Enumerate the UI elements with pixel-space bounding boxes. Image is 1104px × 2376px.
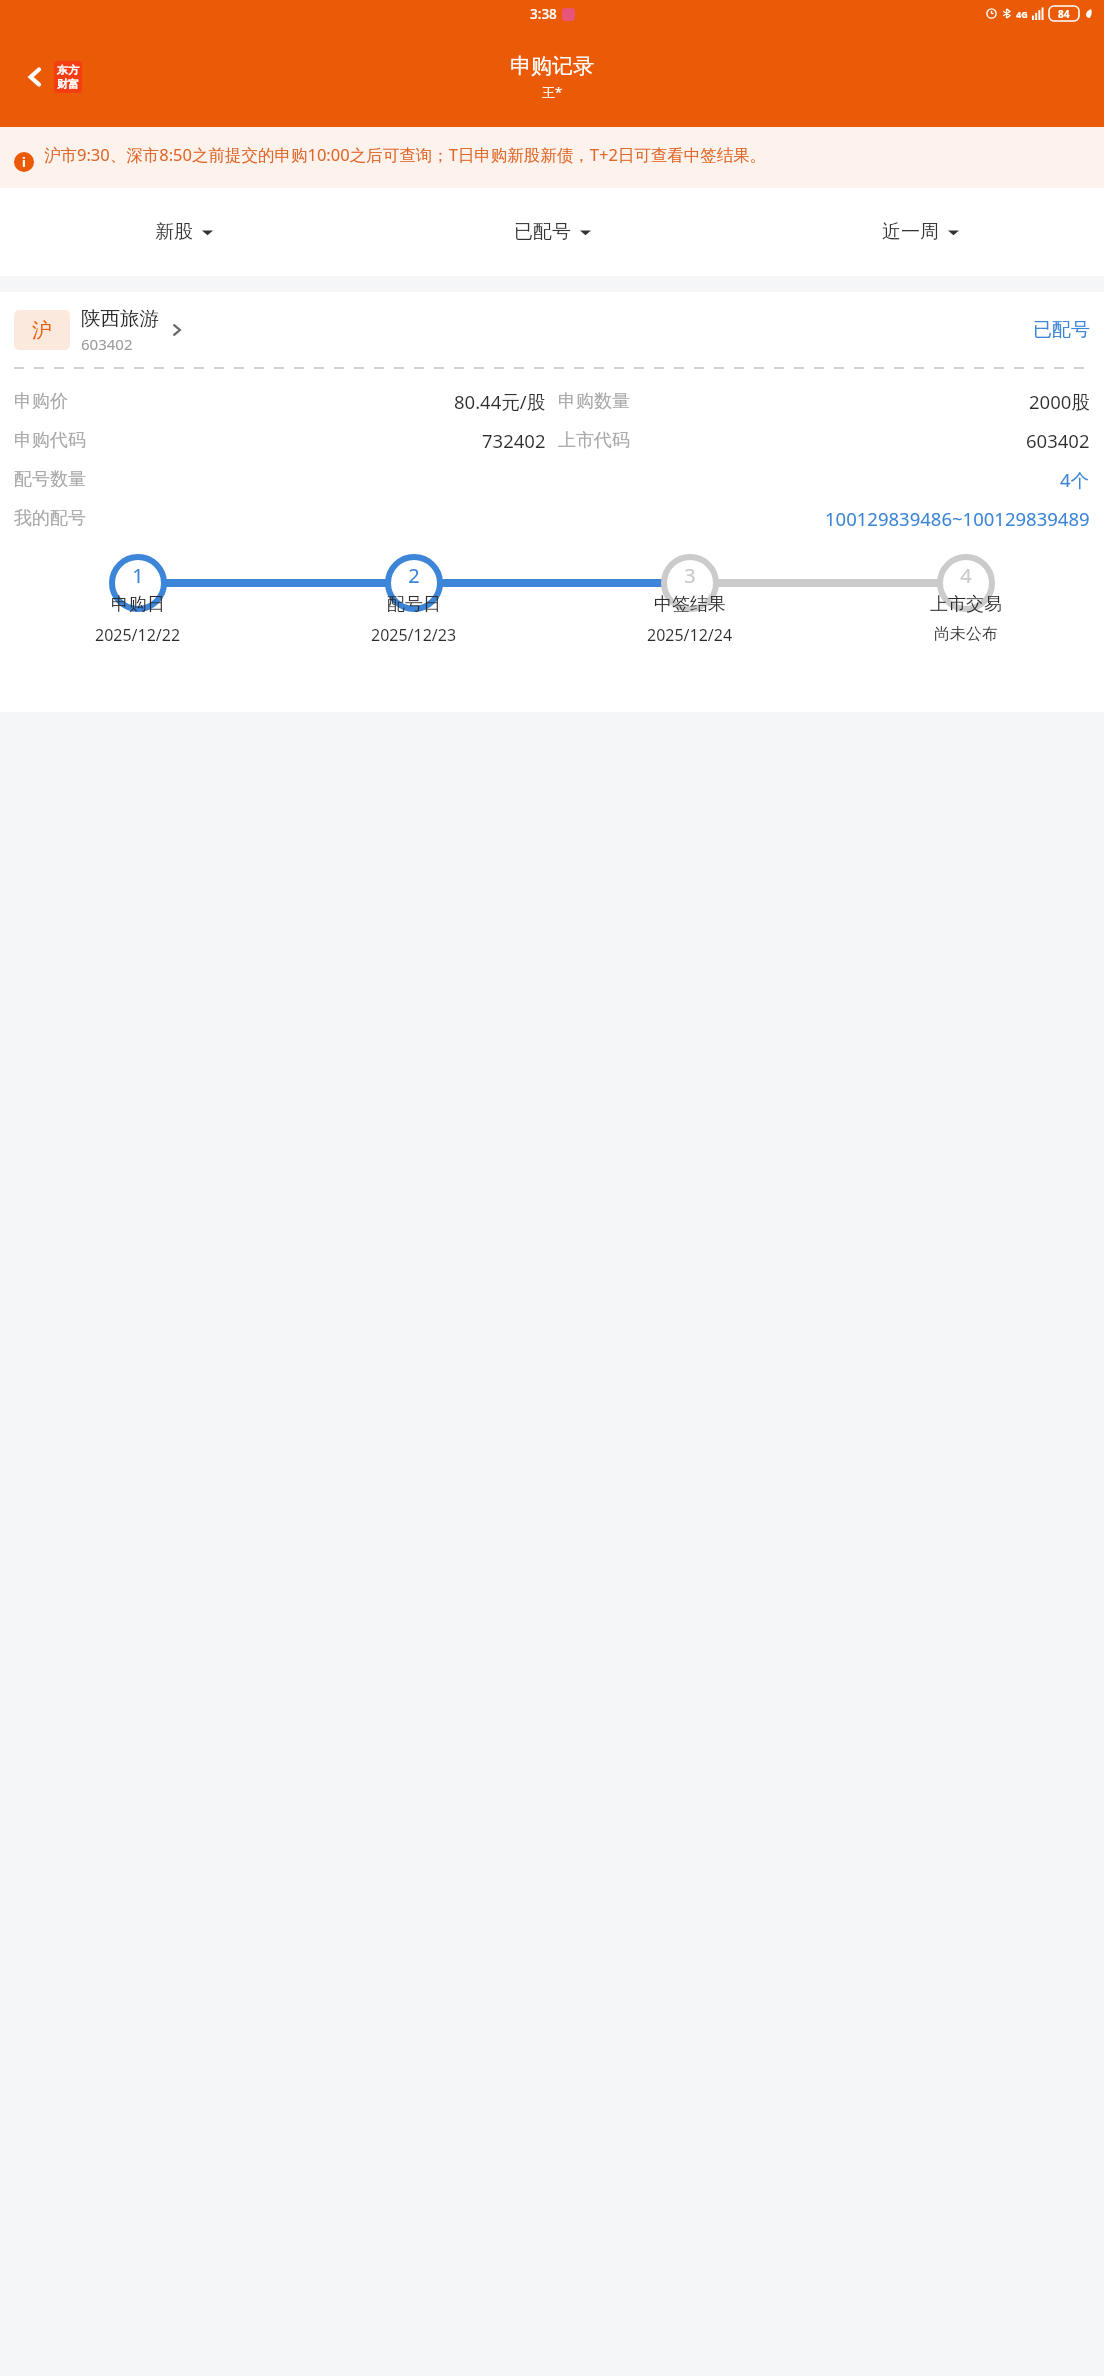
staticText: 4 <box>960 562 972 589</box>
staticText: 2025/12/22 <box>95 624 181 646</box>
staticText: 近一周 <box>882 220 939 244</box>
staticText: 已配号 <box>514 220 571 244</box>
staticText: 申购日 <box>111 593 165 616</box>
staticText: 申购价 <box>14 390 68 413</box>
button[interactable]: 近一周 <box>736 188 1104 276</box>
staticText: 2000股 <box>1029 389 1090 414</box>
staticText: 4个 <box>1060 467 1090 492</box>
staticText: 东方 <box>57 63 79 77</box>
staticText: 603402 <box>81 334 133 354</box>
staticText: 80.44元/股 <box>454 389 546 414</box>
staticText: 2 <box>408 562 420 589</box>
staticText: 配号数量 <box>14 468 86 491</box>
staticText: 财富 <box>57 77 79 91</box>
staticText: 2025/12/24 <box>647 624 733 646</box>
staticText: 尚未公布 <box>934 624 998 644</box>
staticText: 申购数量 <box>558 390 630 413</box>
staticText: 王* <box>542 83 563 101</box>
staticText: 1 <box>132 562 144 589</box>
staticText: 陕西旅游 <box>81 306 159 331</box>
staticText: 已配号 <box>1033 318 1090 342</box>
staticText: 4G <box>1016 8 1028 20</box>
staticText: 中签结果 <box>654 593 726 616</box>
staticText: 沪市9:30、深市8:50之前提交的申购10:00之后可查询；T日申购新股新债，… <box>44 143 767 166</box>
staticText: 上市代码 <box>558 429 630 452</box>
button[interactable]: 已配号 <box>368 188 736 276</box>
button[interactable]: Back <box>18 53 88 101</box>
staticText: 3 <box>684 562 696 589</box>
staticText: 申购代码 <box>14 429 86 452</box>
staticText: 3:38 <box>530 5 557 23</box>
staticText: 配号日 <box>387 593 441 616</box>
button[interactable]: 沪 <box>0 292 1104 368</box>
staticText: 2025/12/23 <box>371 624 457 646</box>
staticText: 732402 <box>482 428 546 453</box>
staticText: 603402 <box>1026 428 1090 453</box>
staticText: 100129839486~100129839489 <box>825 506 1090 531</box>
staticText: 84 <box>1058 7 1070 21</box>
staticText: i <box>22 153 26 171</box>
staticText: 我的配号 <box>14 507 86 530</box>
staticText: 上市交易 <box>930 593 1002 616</box>
staticText: 沪 <box>32 318 52 343</box>
staticText: 申购记录 <box>510 53 594 79</box>
staticText: 新股 <box>155 220 193 244</box>
button[interactable]: 新股 <box>0 188 368 276</box>
